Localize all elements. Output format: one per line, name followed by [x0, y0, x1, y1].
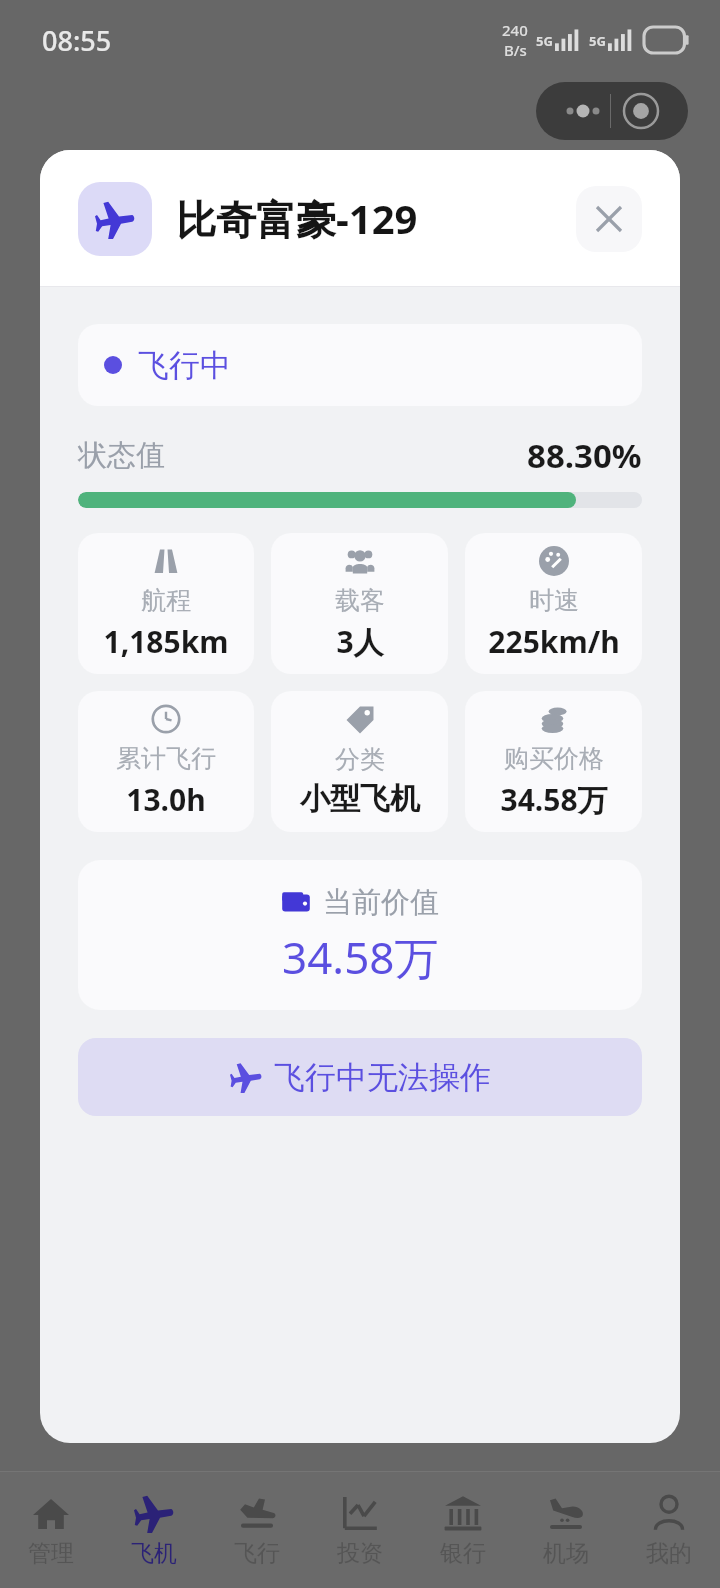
staticText: 分类	[335, 744, 385, 775]
button[interactable]: 时速	[465, 533, 642, 674]
staticText: 飞行	[234, 1539, 280, 1568]
staticText: 我的	[646, 1539, 692, 1568]
staticText: 3人	[336, 621, 384, 662]
staticText: 飞行中无法操作	[274, 1058, 491, 1097]
staticText: 累计飞行	[116, 743, 216, 774]
button[interactable]: 购买价格	[465, 691, 642, 832]
staticText: 投资	[337, 1539, 383, 1568]
staticText: 航程	[141, 585, 191, 616]
button[interactable]: 当前价值	[78, 860, 642, 1010]
staticText: 34.58万	[500, 779, 608, 820]
staticText: 银行	[440, 1539, 486, 1568]
staticText: 5G	[536, 32, 553, 50]
staticText: 225km/h	[488, 621, 620, 662]
button[interactable]: Close	[576, 186, 642, 252]
button[interactable]: Recording indicator	[536, 82, 688, 140]
staticText: 状态值	[78, 437, 165, 474]
staticText: 小型飞机	[300, 780, 420, 818]
staticText: 08:55	[42, 22, 112, 59]
button[interactable]: 累计飞行	[78, 691, 254, 832]
button[interactable]: 航程	[78, 533, 254, 674]
button[interactable]: 机场	[514, 1472, 617, 1588]
staticText: 88.30%	[527, 433, 642, 478]
staticText: 34.58万	[282, 927, 439, 987]
staticText: 13.0h	[126, 779, 206, 820]
staticText: 机场	[543, 1539, 589, 1568]
staticText: 载客	[335, 585, 385, 616]
button[interactable]: 飞行	[205, 1472, 308, 1588]
staticText: 飞行中	[138, 346, 231, 385]
staticText: 飞机	[131, 1539, 177, 1568]
staticText: 购买价格	[504, 743, 604, 774]
staticText: 时速	[529, 585, 579, 616]
button[interactable]: 飞行中	[104, 324, 616, 406]
staticText: 1,185km	[103, 621, 229, 662]
button[interactable]: 飞行中无法操作	[78, 1038, 642, 1116]
button[interactable]: 飞机	[102, 1472, 205, 1588]
button[interactable]: 投资	[308, 1472, 411, 1588]
staticText: B/s	[504, 40, 527, 60]
staticText: 当前价值	[323, 884, 439, 921]
button[interactable]: 载客	[271, 533, 448, 674]
staticText: 比奇富豪-129	[176, 191, 418, 246]
staticText: 管理	[28, 1539, 74, 1568]
button[interactable]: 银行	[411, 1472, 514, 1588]
staticText: 240	[502, 20, 528, 40]
button[interactable]: 分类	[271, 691, 448, 832]
button[interactable]: 我的	[617, 1472, 720, 1588]
button[interactable]: 管理	[0, 1472, 102, 1588]
staticText: 5G	[589, 32, 606, 50]
